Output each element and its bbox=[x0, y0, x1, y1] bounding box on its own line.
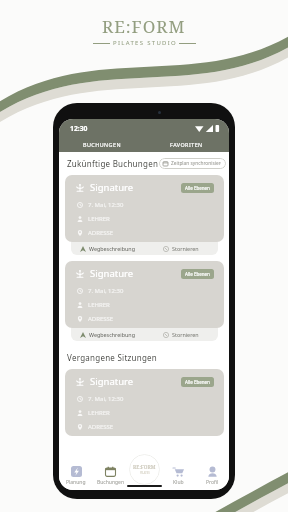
staticText: Zukünftige Buchungen bbox=[67, 158, 159, 169]
staticText: 12:30 bbox=[70, 124, 88, 133]
button[interactable]: Alle Ebenen bbox=[181, 269, 214, 279]
button[interactable]: Signature bbox=[65, 175, 224, 242]
staticText: 7. Mai, 12:30 bbox=[88, 287, 124, 295]
staticText: Alle Ebenen bbox=[185, 271, 210, 277]
button[interactable]: BUCHUNGEN bbox=[59, 137, 144, 152]
staticText: RE:FORM bbox=[133, 464, 156, 471]
staticText: Klub bbox=[173, 479, 184, 486]
staticText: BUCHUNGEN bbox=[83, 141, 121, 148]
button[interactable]: RE:FORM Home bbox=[129, 454, 160, 485]
staticText: ADRESSE bbox=[88, 229, 114, 237]
staticText: LEHRER bbox=[88, 409, 110, 417]
staticText: Wegbeschreibung bbox=[89, 331, 135, 338]
staticText: 7. Mai, 12:30 bbox=[88, 395, 124, 403]
staticText: Buchungen bbox=[97, 479, 124, 486]
staticText: Alle Ebenen bbox=[185, 379, 210, 385]
staticText: 7. Mai, 12:30 bbox=[88, 201, 124, 209]
staticText: Signature bbox=[90, 267, 134, 280]
staticText: Profil bbox=[206, 479, 219, 486]
staticText: Signature bbox=[90, 181, 134, 194]
staticText: ADRESSE bbox=[88, 315, 114, 323]
staticText: PILATES STUDIO bbox=[113, 39, 178, 47]
button[interactable]: Signature bbox=[65, 261, 224, 328]
staticText: FAVORITEN bbox=[170, 141, 203, 148]
button[interactable]: FAVORITEN bbox=[144, 137, 229, 152]
button[interactable]: Zeitplan synchronisieren bbox=[159, 158, 226, 169]
staticText: LEHRER bbox=[88, 301, 110, 309]
button[interactable]: Signature bbox=[65, 369, 224, 436]
button[interactable]: Planung bbox=[59, 466, 93, 486]
staticText: PILATES bbox=[140, 471, 150, 475]
staticText: ADRESSE bbox=[88, 423, 114, 431]
staticText: Alle Ebenen bbox=[185, 185, 210, 191]
button[interactable]: Stornieren bbox=[144, 242, 218, 255]
staticText: Stornieren bbox=[172, 331, 199, 338]
staticText: Vergangene Sitzungen bbox=[67, 352, 158, 363]
button[interactable]: Wegbeschreibung bbox=[71, 242, 144, 255]
staticText: RE:FORM bbox=[102, 15, 186, 38]
staticText: LEHRER bbox=[88, 215, 110, 223]
staticText: Planung bbox=[66, 479, 86, 486]
button[interactable]: Buchungen bbox=[93, 466, 127, 486]
staticText: Wegbeschreibung bbox=[89, 245, 135, 252]
button[interactable]: Wegbeschreibung bbox=[71, 328, 144, 341]
button[interactable]: Stornieren bbox=[144, 328, 218, 341]
button[interactable]: Profil bbox=[195, 466, 229, 486]
staticText: Signature bbox=[90, 375, 134, 388]
button[interactable]: Klub bbox=[161, 466, 195, 486]
button[interactable]: Alle Ebenen bbox=[181, 183, 214, 193]
button[interactable]: Alle Ebenen bbox=[181, 377, 214, 387]
staticText: Zeitplan synchronisieren bbox=[171, 160, 221, 167]
staticText: Stornieren bbox=[172, 245, 199, 252]
